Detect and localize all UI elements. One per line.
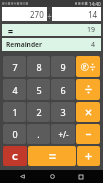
button[interactable]: 8 bbox=[27, 56, 50, 77]
staticText: 5 bbox=[36, 84, 42, 96]
button[interactable]: Add bbox=[77, 146, 100, 166]
staticText: 4 bbox=[91, 40, 96, 50]
staticText: 8 bbox=[36, 61, 42, 73]
staticText: 4 bbox=[12, 84, 18, 96]
button[interactable]: . bbox=[27, 124, 50, 144]
button[interactable]: +/- bbox=[51, 124, 75, 144]
staticText: 6 bbox=[60, 84, 66, 96]
button[interactable]: Remainder result bbox=[6, 38, 96, 51]
staticText: +/- bbox=[58, 129, 69, 140]
button[interactable]: 0 bbox=[3, 124, 26, 144]
staticText: 14 bbox=[88, 9, 98, 20]
button[interactable]: 5 bbox=[27, 79, 50, 100]
button[interactable]: Multiply bbox=[76, 102, 100, 122]
staticText: . bbox=[37, 128, 40, 140]
button[interactable]: Divisor bbox=[52, 7, 98, 21]
button[interactable]: Home bbox=[45, 170, 59, 183]
button[interactable]: Equals bbox=[28, 146, 76, 166]
staticText: 1 bbox=[12, 106, 18, 118]
button[interactable]: 9 bbox=[51, 56, 75, 77]
button[interactable]: C bbox=[3, 146, 27, 166]
staticText: 14:40 bbox=[89, 1, 101, 7]
button[interactable]: Back bbox=[15, 170, 29, 183]
button[interactable]: 1 bbox=[3, 102, 26, 122]
button[interactable]: 2 bbox=[27, 102, 50, 122]
staticText: 0 bbox=[12, 128, 18, 140]
button[interactable]: 4 bbox=[3, 79, 26, 100]
staticText: Remainder bbox=[6, 40, 42, 49]
staticText: 2 bbox=[36, 106, 42, 118]
staticText: 9 bbox=[60, 61, 66, 73]
button[interactable]: Subtract bbox=[76, 124, 100, 144]
button[interactable]: 7 bbox=[3, 56, 26, 77]
button[interactable]: Remainder divide bbox=[76, 56, 100, 77]
button[interactable]: Divide bbox=[76, 79, 100, 100]
staticText: 7 bbox=[12, 61, 18, 73]
staticText: 19 bbox=[87, 25, 96, 35]
staticText: C bbox=[12, 150, 18, 162]
button[interactable]: Recents bbox=[74, 170, 88, 183]
button[interactable]: Quotient result bbox=[8, 24, 96, 36]
staticText: 270 bbox=[30, 9, 44, 20]
staticText: 3 bbox=[60, 106, 66, 118]
button[interactable]: 3 bbox=[51, 102, 75, 122]
button[interactable]: 6 bbox=[51, 79, 75, 100]
button[interactable]: Dividend bbox=[2, 7, 44, 21]
